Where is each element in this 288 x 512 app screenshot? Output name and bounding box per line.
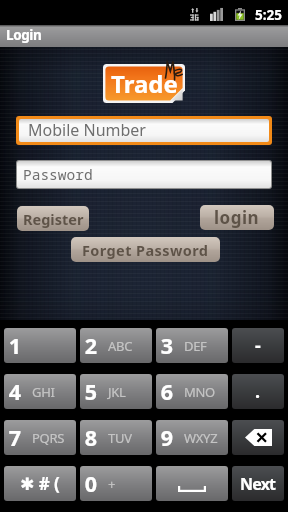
staticText: ✱ # ( bbox=[20, 472, 60, 495]
staticText: Mobile Number bbox=[28, 119, 146, 141]
staticText: login bbox=[214, 206, 260, 229]
staticText: 9 bbox=[160, 423, 173, 452]
staticText: Next bbox=[240, 473, 276, 495]
staticText: MNO bbox=[184, 383, 215, 401]
button[interactable]: Delete bbox=[232, 420, 284, 455]
staticText: - bbox=[255, 333, 261, 358]
button[interactable]: - bbox=[232, 328, 284, 363]
staticText: Register bbox=[23, 209, 84, 229]
staticText: 1 bbox=[8, 331, 21, 360]
staticText: Forget Password bbox=[82, 240, 209, 260]
button[interactable]: 6 MNO bbox=[156, 374, 228, 409]
button[interactable]: 9 WXYZ bbox=[156, 420, 228, 455]
staticText: 6 bbox=[160, 377, 173, 406]
staticText: 3 bbox=[160, 331, 173, 360]
button[interactable]: . bbox=[232, 374, 284, 409]
staticText: Password bbox=[23, 164, 93, 184]
staticText: WXYZ bbox=[184, 429, 218, 447]
button[interactable]: 5 JKL bbox=[80, 374, 152, 409]
staticText: 5:25 bbox=[255, 6, 282, 24]
staticText: 4 bbox=[8, 377, 21, 406]
button[interactable]: 0 + bbox=[80, 466, 152, 501]
button[interactable]: 8 TUV bbox=[80, 420, 152, 455]
button[interactable]: Mobile Number bbox=[19, 119, 269, 142]
button[interactable]: 4 GHI bbox=[4, 374, 76, 409]
button[interactable]: 2 ABC bbox=[80, 328, 152, 363]
button[interactable]: Forget Password bbox=[71, 237, 220, 262]
staticText: TUV bbox=[108, 429, 132, 447]
staticText: JKL bbox=[108, 383, 126, 401]
button[interactable]: 3 DEF bbox=[156, 328, 228, 363]
staticText: 0 bbox=[84, 469, 97, 498]
staticText: Trade bbox=[111, 67, 178, 100]
button[interactable]: Next bbox=[232, 466, 284, 501]
button[interactable]: login bbox=[200, 205, 274, 230]
staticText: ABC bbox=[108, 337, 133, 355]
staticText: 2 bbox=[84, 331, 97, 360]
button[interactable]: Password bbox=[17, 161, 271, 188]
staticText: GHI bbox=[32, 383, 55, 401]
staticText: PQRS bbox=[32, 429, 65, 447]
staticText: Login bbox=[6, 26, 42, 44]
button[interactable]: 7 PQRS bbox=[4, 420, 76, 455]
staticText: 5 bbox=[84, 377, 97, 406]
staticText: . bbox=[255, 379, 261, 404]
button[interactable]: Register bbox=[17, 206, 89, 231]
staticText: 8 bbox=[84, 423, 97, 452]
staticText: DEF bbox=[184, 337, 207, 355]
staticText: 7 bbox=[8, 423, 21, 452]
staticText: + bbox=[108, 475, 116, 493]
button[interactable]: ✱ # ( bbox=[4, 466, 76, 501]
button[interactable]: Space bbox=[156, 466, 228, 501]
button[interactable]: 1 bbox=[4, 328, 76, 363]
